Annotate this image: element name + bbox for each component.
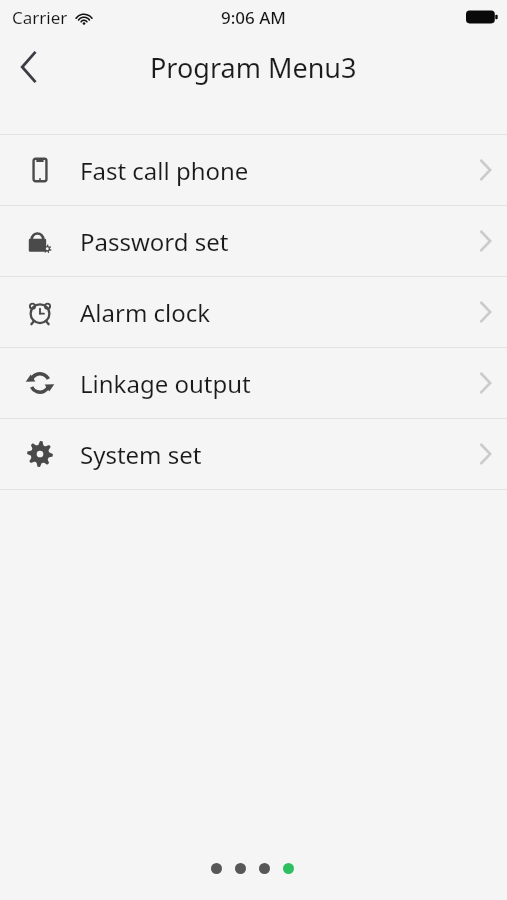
button[interactable]: System set: [0, 419, 507, 489]
button[interactable]: Page 3: [252, 860, 276, 876]
staticText: Fast call phone: [80, 154, 249, 187]
button[interactable]: Alarm clock: [0, 277, 507, 347]
button[interactable]: Page 1: [204, 860, 228, 876]
staticText: System set: [80, 438, 202, 471]
button[interactable]: Page 4: [276, 860, 300, 876]
staticText: Alarm clock: [80, 296, 211, 329]
button[interactable]: Back: [0, 38, 58, 96]
staticText: 9:06 AM: [221, 6, 286, 29]
staticText: Program Menu3: [150, 49, 357, 86]
staticText: Password set: [80, 225, 229, 258]
staticText: Carrier: [12, 6, 68, 29]
staticText: Linkage output: [80, 367, 251, 400]
button[interactable]: Page 2: [228, 860, 252, 876]
button[interactable]: Fast call phone: [0, 135, 507, 205]
button[interactable]: Password set: [0, 206, 507, 276]
button[interactable]: Linkage output: [0, 348, 507, 418]
